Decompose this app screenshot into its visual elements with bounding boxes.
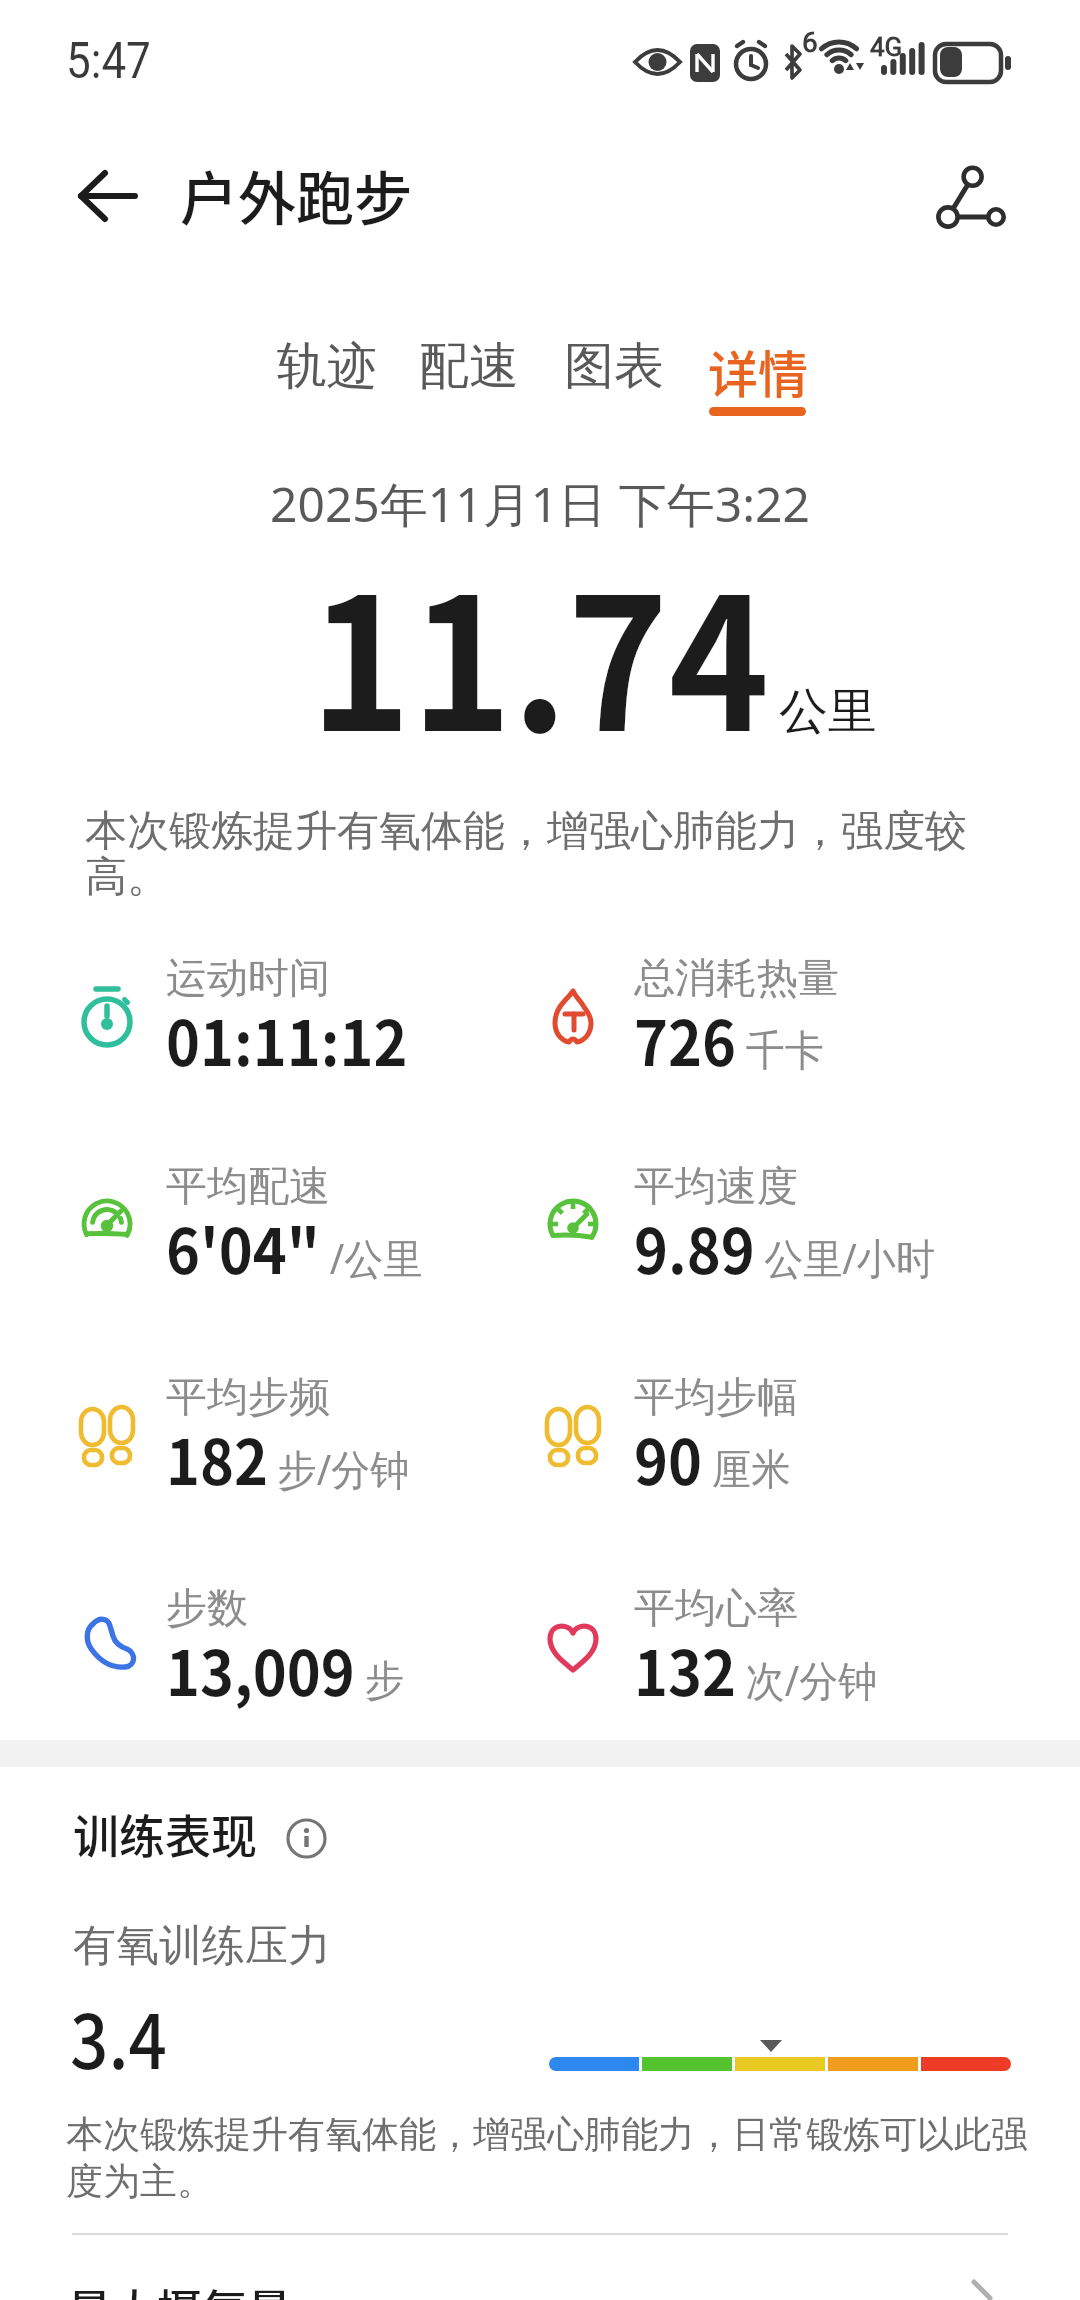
staticText: 步数 <box>166 1583 248 1635</box>
staticText: 次/分钟 <box>746 1651 878 1708</box>
staticText: 5:47 <box>66 32 151 91</box>
button[interactable] <box>72 162 144 234</box>
staticText: 千卡 <box>746 1025 824 1078</box>
staticText: 3.4 <box>70 1983 167 2090</box>
staticText: 公里/小时 <box>764 1229 935 1286</box>
staticText: 132 <box>634 1624 736 1714</box>
staticText: 4G <box>870 32 903 62</box>
staticText: /公里 <box>330 1229 423 1286</box>
staticText: 厘米 <box>712 1444 790 1497</box>
staticText: 平均速度 <box>634 1161 798 1213</box>
staticText: 公里 <box>779 681 877 743</box>
staticText: 平均步频 <box>166 1372 330 1424</box>
button[interactable] <box>930 158 1014 242</box>
staticText: 11.74 <box>310 519 770 784</box>
staticText: 总消耗热量 <box>634 953 839 1005</box>
button[interactable] <box>286 1818 327 1859</box>
button[interactable]: 配速 <box>399 325 539 408</box>
button[interactable]: 详情 <box>688 325 828 417</box>
staticText: 配速 <box>419 335 519 398</box>
staticText: 9.89 <box>634 1202 755 1292</box>
staticText: 运动时间 <box>166 953 330 1005</box>
staticText: 有氧训练压力 <box>73 1919 331 1973</box>
staticText: 图表 <box>564 335 664 398</box>
staticText: 6 <box>802 26 818 59</box>
staticText: 本次锻炼提升有氧体能，增强心肺能力，日常锻炼可以此强度为主。 <box>66 2111 1051 2205</box>
staticText: 最大摄氧量 <box>67 2276 293 2300</box>
staticText: 本次锻炼提升有氧体能，增强心肺能力，强度较高。 <box>85 805 980 904</box>
button[interactable]: 最大摄氧量 <box>0 2258 1080 2300</box>
staticText: 平均配速 <box>166 1161 330 1213</box>
staticText: 详情 <box>708 335 808 407</box>
staticText: 步/分钟 <box>278 1440 410 1497</box>
staticText: 平均步幅 <box>634 1372 798 1424</box>
staticText: 182 <box>166 1413 268 1503</box>
staticText: 01:11:12 <box>166 994 408 1084</box>
staticText: 步 <box>365 1655 404 1708</box>
staticText: 平均心率 <box>634 1583 798 1635</box>
staticText: 726 <box>634 994 736 1084</box>
button[interactable]: 轨迹 <box>257 325 397 408</box>
button[interactable]: 图表 <box>544 325 684 408</box>
staticText: 6'04" <box>166 1202 320 1292</box>
staticText: 13,009 <box>166 1624 356 1714</box>
staticText: 90 <box>634 1413 703 1503</box>
staticText: 轨迹 <box>277 335 377 398</box>
staticText: 训练表现 <box>73 1800 257 1867</box>
staticText: 2025年11月1日 下午3:22 <box>270 471 810 537</box>
staticText: 户外跑步 <box>180 153 413 237</box>
